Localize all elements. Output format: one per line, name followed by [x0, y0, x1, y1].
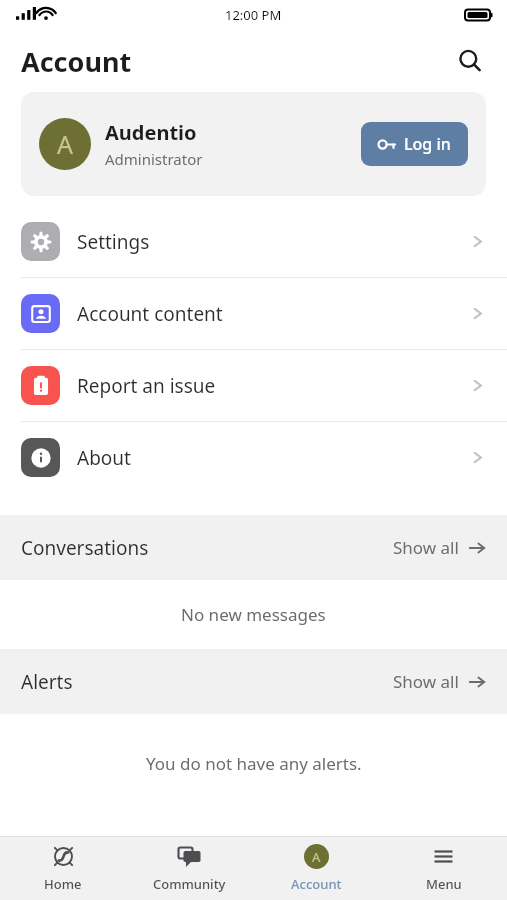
staticText: About [77, 445, 469, 471]
staticText: Administrator [105, 149, 203, 169]
staticText: Home [44, 875, 82, 893]
button[interactable]: Settings [0, 206, 507, 277]
button[interactable]: Account content [0, 278, 507, 349]
button[interactable]: Conversations [0, 515, 507, 580]
staticText: Settings [77, 229, 469, 255]
button[interactable]: Report an issue [0, 350, 507, 421]
staticText: Show all [393, 536, 459, 559]
staticText: Alerts [21, 669, 393, 695]
staticText: Account [291, 875, 342, 893]
button[interactable]: Search [447, 38, 493, 84]
staticText: Report an issue [77, 373, 469, 399]
staticText: Log in [404, 133, 451, 155]
staticText: A [57, 127, 73, 161]
staticText: You do not have any alerts. [146, 752, 362, 775]
staticText: Community [153, 875, 226, 893]
button[interactable]: Alerts [0, 649, 507, 714]
button[interactable]: Home [0, 837, 126, 900]
button[interactable]: Menu [380, 837, 507, 900]
staticText: 12:00 PM [225, 6, 282, 24]
staticText: Account content [77, 301, 469, 327]
staticText: Menu [426, 875, 462, 893]
staticText: Conversations [21, 535, 393, 561]
button[interactable]: A [253, 837, 380, 900]
button[interactable]: A [21, 92, 486, 196]
staticText: Account [21, 43, 132, 80]
staticText: Audentio [105, 119, 197, 146]
staticText: A [312, 848, 321, 866]
staticText: Show all [393, 670, 459, 693]
button[interactable]: Log in [361, 122, 468, 166]
staticText: No new messages [181, 603, 326, 626]
button[interactable]: About [0, 422, 507, 493]
button[interactable]: Community [126, 837, 253, 900]
